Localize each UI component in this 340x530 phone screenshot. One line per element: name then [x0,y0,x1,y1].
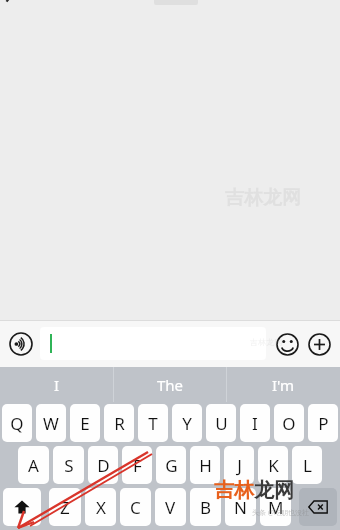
button[interactable]: The [114,367,227,402]
button[interactable]: N [225,488,256,526]
button[interactable] [40,327,266,360]
button[interactable]: F [122,446,152,484]
staticText: The [157,375,184,395]
staticText: 头条 @吃朋也没社 [252,508,310,518]
button[interactable]: Z [49,488,81,526]
staticText: I [252,412,258,435]
staticText: F [133,454,142,477]
button[interactable]: D [88,446,118,484]
staticText: I [54,375,60,395]
staticText: P [318,412,329,435]
staticText: B [200,496,212,519]
button[interactable]: Shift [3,488,41,526]
button[interactable]: L [292,446,322,484]
button[interactable]: C [120,488,151,526]
button[interactable]: V [155,488,186,526]
staticText: Y [182,412,192,435]
staticText: S [64,454,74,477]
staticText: 吉林 [225,186,263,210]
staticText: L [303,454,312,477]
button[interactable]: J [224,446,254,484]
button[interactable]: W [36,404,66,442]
staticText: C [130,496,141,519]
button[interactable]: Back [4,0,18,14]
button[interactable]: Emoji [272,329,302,359]
staticText: V [165,496,176,519]
staticText: I'm [272,375,295,395]
staticText: K [268,454,279,477]
button[interactable]: K [258,446,288,484]
button[interactable]: M [260,488,291,526]
button[interactable]: A [18,446,49,484]
button[interactable]: H [190,446,220,484]
button[interactable]: X [85,488,116,526]
button[interactable]: Q [2,404,32,442]
button[interactable]: Backspace [299,488,337,526]
staticText: E [80,412,90,435]
button[interactable]: P [308,404,338,442]
button[interactable]: I [240,404,270,442]
staticText: H [199,454,212,477]
button[interactable]: I'm [227,367,340,402]
staticText: 吉林 [214,478,254,503]
staticText: D [97,454,110,477]
button[interactable]: E [70,404,100,442]
button[interactable]: R [104,404,134,442]
staticText: 龙网 [263,186,301,210]
staticText: O [282,412,296,435]
staticText: M [268,496,284,519]
button[interactable]: I [0,367,114,402]
staticText: U [215,412,228,435]
button[interactable]: More [304,329,334,359]
staticText: Q [10,412,24,435]
button[interactable]: O [274,404,304,442]
staticText: Z [60,496,70,519]
button[interactable]: Voice input [6,329,36,359]
staticText: 吉林龙网 [250,337,282,347]
button[interactable]: B [190,488,221,526]
button[interactable]: G [156,446,186,484]
staticText: J [237,454,242,477]
staticText: G [165,454,178,477]
staticText: 龙网 [254,478,294,503]
staticText: X [96,496,106,519]
button[interactable]: U [206,404,236,442]
button[interactable]: T [138,404,168,442]
staticText: W [43,412,59,435]
staticText: T [148,412,158,435]
button[interactable]: S [53,446,84,484]
staticText: A [28,454,39,477]
staticText: N [234,496,247,519]
staticText: R [114,412,125,435]
button[interactable]: Y [172,404,202,442]
